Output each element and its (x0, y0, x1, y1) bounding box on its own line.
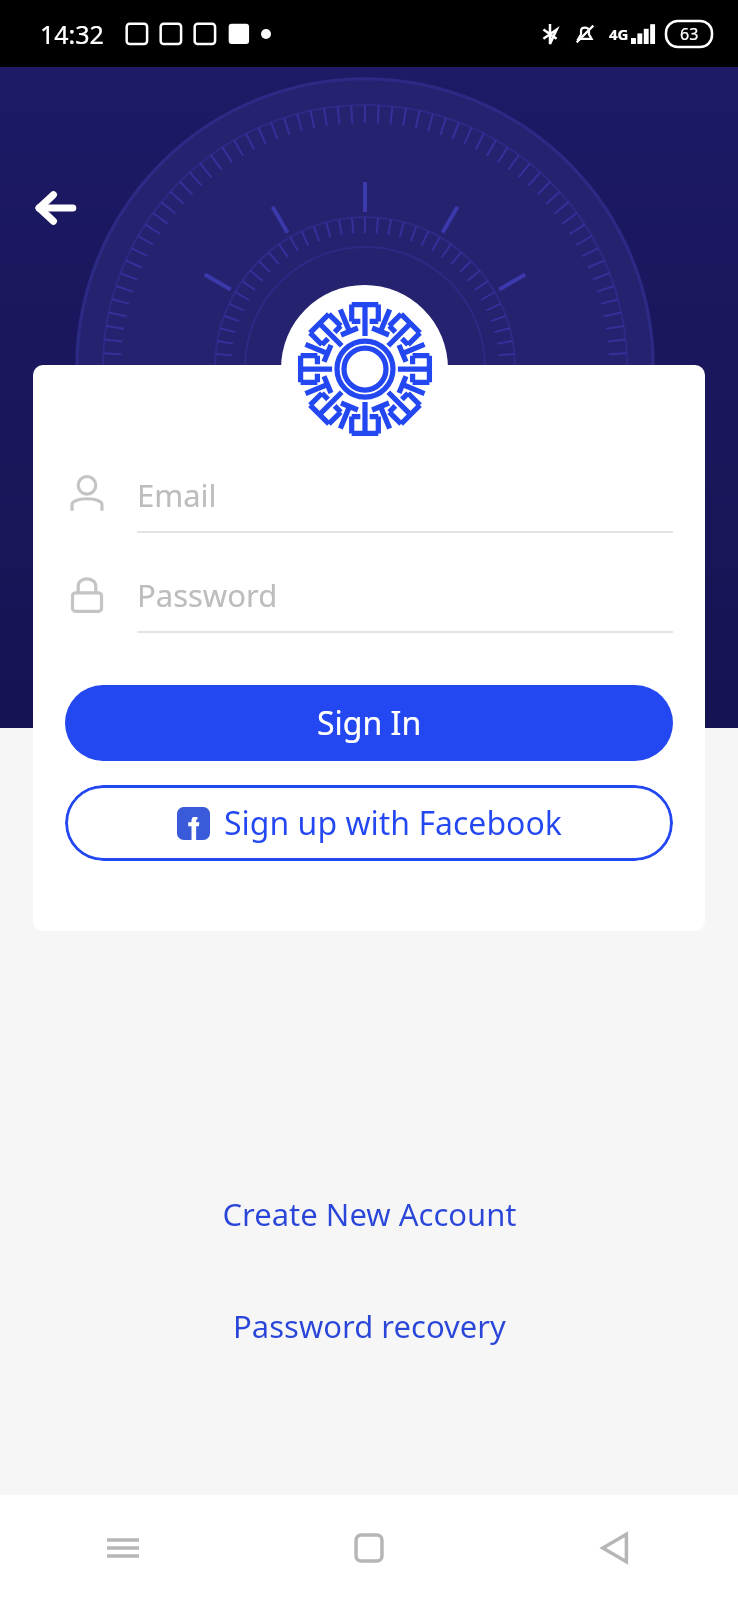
button[interactable]: Home (246, 1495, 492, 1600)
button[interactable]: Password recovery (217, 1297, 522, 1355)
staticText: Password (137, 574, 278, 616)
staticText: Email (137, 474, 217, 516)
button[interactable]: Create New Account (206, 1185, 533, 1243)
staticText: Sign up with Facebook (224, 801, 562, 845)
staticText: 4G (609, 24, 629, 44)
staticText: Sign In (317, 701, 422, 745)
button[interactable]: Back (22, 174, 90, 242)
staticText: 63 (680, 23, 699, 45)
staticText: Password recovery (233, 1305, 506, 1347)
button[interactable]: Sign In (65, 685, 673, 761)
button[interactable]: Recent apps (0, 1495, 246, 1600)
staticText: Create New Account (222, 1193, 517, 1235)
staticText: 14:32 (40, 17, 104, 51)
button[interactable]: Back (492, 1495, 738, 1600)
button[interactable]: Sign up with Facebook (65, 785, 673, 861)
